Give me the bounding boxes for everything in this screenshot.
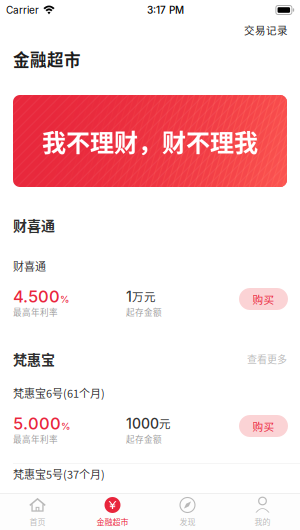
staticText: 起存金额 [126,433,162,445]
staticText: 1000 [126,415,159,432]
staticText: 我不理财，财不理我 [42,124,258,158]
staticText: 我的 [254,516,270,527]
staticText: 4.500 [13,286,60,306]
button[interactable]: 交易记录 [232,19,300,41]
button[interactable]: 购买 [239,288,288,310]
button[interactable]: 我的 [225,490,300,530]
staticText: 金融超市 [96,516,128,527]
staticText: 最高年利率 [13,433,58,445]
staticText: 元 [159,415,171,432]
button[interactable]: 购买 [239,415,288,437]
staticText: 1 [126,288,132,305]
staticText: 购买 [252,291,274,307]
staticText: 财喜通 [13,258,46,274]
staticText: 起存金额 [126,306,162,318]
staticText: 梵惠宝6号(61个月) [13,385,105,401]
staticText: 查看更多 [247,352,287,366]
staticText: Carrier [6,4,39,16]
staticText: 首页 [29,516,45,527]
staticText: 3:17 PM [147,4,184,16]
button[interactable]: 查看更多 [247,352,287,366]
staticText: 购买 [252,418,274,434]
staticText: 梵惠宝5号(37个月) [13,466,105,482]
staticText: 最高年利率 [13,306,58,318]
staticText: % [61,420,70,432]
button[interactable]: 金融超市 [75,490,150,530]
staticText: % [60,293,69,305]
button[interactable]: 发现 [150,490,225,530]
staticText: 梵惠宝 [13,349,55,369]
staticText: 万元 [132,288,156,305]
staticText: 财喜通 [13,215,55,235]
staticText: 5.000 [13,413,61,433]
staticText: 交易记录 [244,22,288,38]
staticText: 发现 [179,516,195,527]
button[interactable]: 首页 [0,490,75,530]
staticText: 金融超市 [13,47,81,71]
